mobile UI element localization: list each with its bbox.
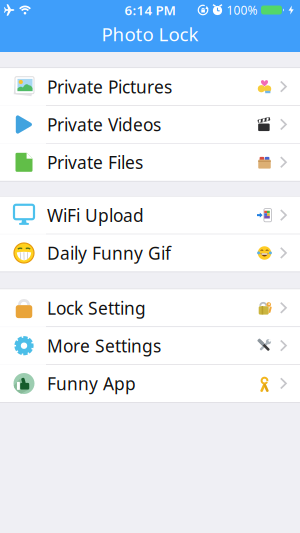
staticText: Daily Funny Gif — [47, 241, 171, 264]
button[interactable]: Lock Setting — [0, 289, 300, 326]
staticText: Private Videos — [47, 113, 161, 136]
staticText: WiFi Upload — [47, 204, 144, 227]
staticText: 100% — [226, 2, 257, 18]
staticText: Funny App — [47, 372, 136, 395]
staticText: More Settings — [47, 334, 161, 357]
staticText: Lock Setting — [47, 296, 146, 319]
button[interactable]: Private Pictures — [0, 68, 300, 105]
staticText: Photo Lock — [101, 22, 198, 46]
staticText: Private Pictures — [47, 75, 172, 98]
button[interactable]: WiFi Upload — [0, 197, 300, 234]
staticText: 6:14 PM — [124, 1, 175, 19]
staticText: Private Files — [47, 151, 143, 174]
button[interactable]: Daily Funny Gif — [0, 234, 300, 272]
button[interactable]: Private Videos — [0, 106, 300, 143]
button[interactable]: Funny App — [0, 365, 300, 402]
button[interactable]: Private Files — [0, 144, 300, 181]
button[interactable]: More Settings — [0, 327, 300, 364]
